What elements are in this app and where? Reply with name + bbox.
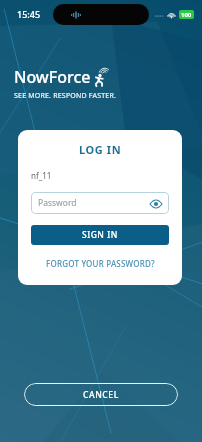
staticText: LOG IN	[79, 142, 122, 157]
button[interactable]: CANCEL	[24, 383, 178, 406]
staticText: Password	[38, 197, 149, 209]
staticText: FORGOT YOUR PASSWORD?	[46, 258, 155, 269]
button[interactable]: Password	[31, 192, 169, 214]
staticText: SIGN IN	[82, 229, 118, 241]
staticText: SEE MORE. RESPOND FASTER.	[14, 91, 117, 101]
button[interactable]: FORGOT YOUR PASSWORD?	[42, 256, 159, 271]
staticText: 15:45	[17, 8, 41, 20]
button[interactable]: SIGN IN	[31, 225, 169, 245]
button[interactable]: Show password	[149, 197, 162, 210]
staticText: CANCEL	[83, 389, 119, 401]
staticText: nf_11	[31, 170, 169, 181]
staticText: 100	[181, 11, 192, 19]
staticText: NowForce	[14, 66, 91, 88]
